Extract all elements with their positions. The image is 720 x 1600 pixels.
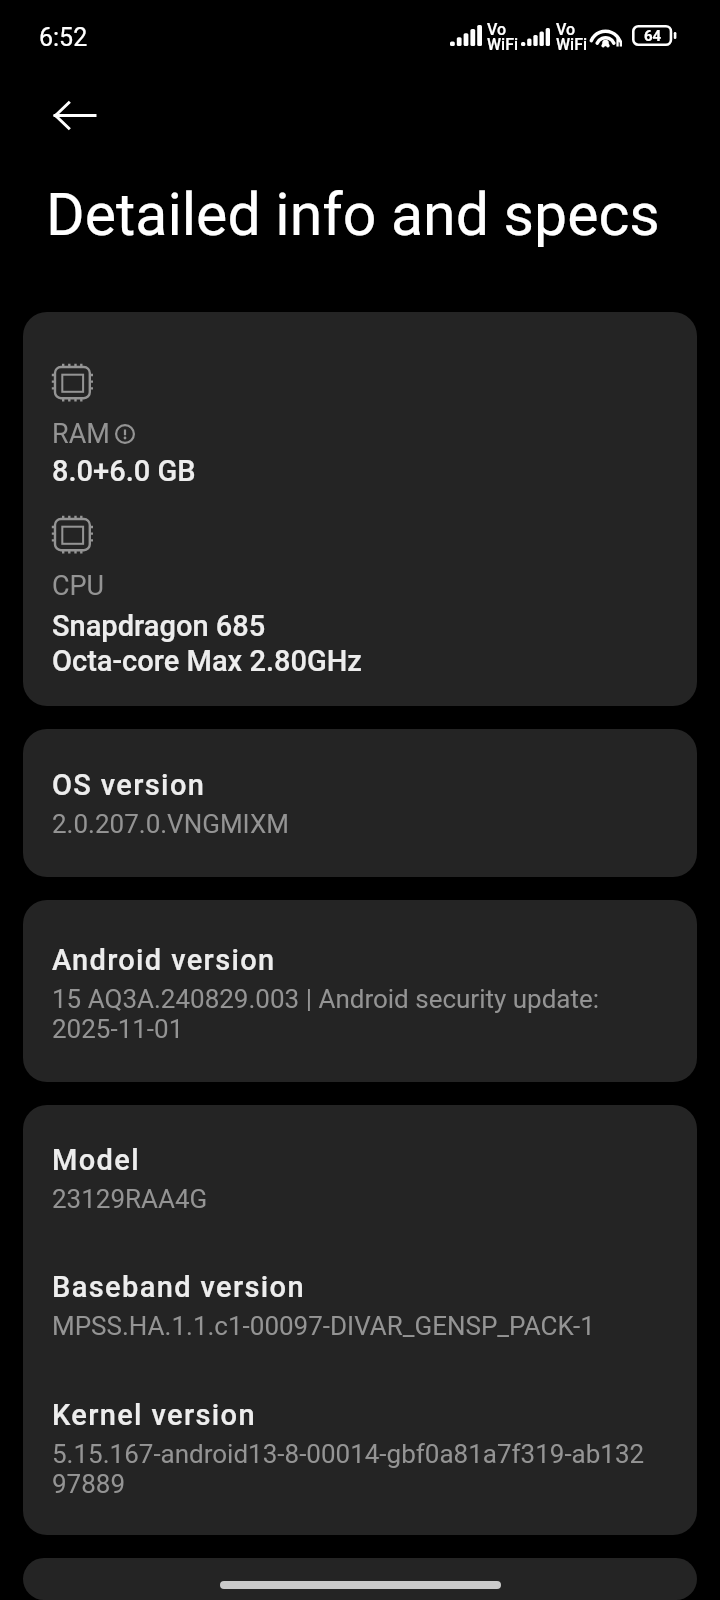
button[interactable]: Model [23, 1105, 697, 1535]
button[interactable]: Android version [23, 900, 697, 1082]
staticText: RAM [52, 418, 110, 450]
staticText: 64 [644, 27, 662, 45]
staticText: CPU [52, 570, 105, 602]
staticText: 8.0+6.0 GB [52, 454, 196, 488]
staticText: 6:52 [39, 23, 88, 52]
staticText: Vo [487, 20, 507, 39]
button[interactable]: RAM [23, 312, 697, 706]
staticText: WiFi [487, 35, 519, 54]
staticText: Baseband version [52, 1270, 305, 1304]
button[interactable]: OS version [23, 729, 697, 877]
staticText: 15 AQ3A.240829.003 | Android security up… [52, 984, 600, 1044]
staticText: 23129RAA4G [52, 1184, 208, 1214]
staticText: OS version [52, 768, 206, 802]
staticText: Snapdragon 685 Octa-core Max 2.80GHz [52, 609, 362, 678]
staticText: Android version [52, 943, 276, 977]
staticText: MPSS.HA.1.1.c1-00097-DIVAR_GENSP_PACK-1 [52, 1311, 595, 1341]
staticText: Model [52, 1143, 141, 1177]
staticText: Detailed info and specs [46, 180, 660, 249]
staticText: Vo [556, 20, 576, 39]
staticText: 5.15.167-android13-8-00014-gbf0a81a7f319… [52, 1439, 645, 1499]
staticText: WiFi [556, 35, 588, 54]
button[interactable]: Back [38, 86, 110, 144]
staticText: Kernel version [52, 1398, 256, 1432]
staticText: 2.0.207.0.VNGMIXM [52, 809, 289, 839]
